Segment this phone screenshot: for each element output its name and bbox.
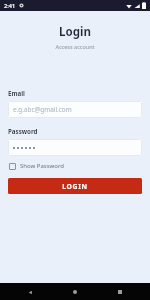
staticText: Email: [8, 89, 25, 97]
staticText: Password: [8, 127, 38, 135]
button[interactable]: Home: [67, 284, 83, 300]
button[interactable]: Recent apps: [112, 284, 128, 300]
button[interactable]: [8, 139, 142, 156]
staticText: Login: [59, 24, 91, 40]
staticText: Access account: [55, 43, 95, 50]
button[interactable]: LOGIN: [8, 178, 142, 194]
button[interactable]: e.g.abc@gmail.com: [8, 101, 142, 118]
staticText: e.g.abc@gmail.com: [13, 105, 72, 114]
button[interactable]: Show Password: [8, 161, 65, 171]
staticText: LOGIN: [62, 182, 88, 191]
button[interactable]: Back: [22, 284, 38, 300]
staticText: Show Password: [20, 162, 64, 170]
staticText: 2:41: [4, 2, 16, 10]
